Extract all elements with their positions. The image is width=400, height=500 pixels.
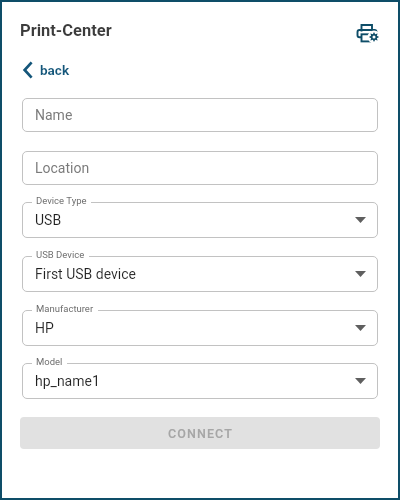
staticText: CONNECT xyxy=(168,426,233,441)
button[interactable]: Location xyxy=(22,151,378,185)
staticText: Name xyxy=(35,107,73,123)
staticText: Device Type xyxy=(36,195,87,206)
staticText: HP xyxy=(35,320,54,336)
button[interactable]: back xyxy=(22,60,70,80)
staticText: Manufacturer xyxy=(36,303,94,314)
staticText: back xyxy=(40,62,70,78)
button[interactable]: Name xyxy=(22,98,378,132)
button[interactable]: First USB device xyxy=(22,249,378,292)
button[interactable]: hp_name1 xyxy=(22,356,378,399)
staticText: USB xyxy=(35,212,62,228)
button[interactable] xyxy=(352,18,384,48)
staticText: USB Device xyxy=(36,249,85,260)
button[interactable]: HP xyxy=(22,303,378,346)
staticText: First USB device xyxy=(35,266,136,282)
button[interactable]: CONNECT xyxy=(20,417,380,449)
staticText: Print-Center xyxy=(20,21,112,40)
button[interactable]: USB xyxy=(22,195,378,238)
staticText: Model xyxy=(36,356,63,367)
staticText: hp_name1 xyxy=(35,373,100,389)
staticText: Location xyxy=(35,160,90,176)
